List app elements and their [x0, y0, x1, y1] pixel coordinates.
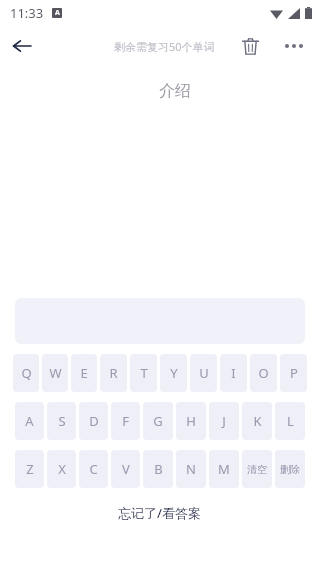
button[interactable]: More options [272, 26, 316, 66]
staticText: F [122, 412, 129, 430]
staticText: E [80, 364, 88, 382]
staticText: C [89, 460, 98, 478]
button[interactable]: O [250, 354, 277, 392]
staticText: 剩余需复习50个单词 [114, 39, 215, 54]
staticText: L [287, 412, 294, 430]
staticText: 删除 [280, 463, 300, 476]
button[interactable]: Y [160, 354, 187, 392]
button[interactable]: 删除 [275, 450, 305, 488]
staticText: V [122, 460, 130, 478]
staticText: U [199, 364, 209, 382]
button[interactable]: U [190, 354, 217, 392]
staticText: Y [170, 364, 178, 382]
button[interactable]: Delete [228, 26, 272, 66]
button[interactable]: F [111, 402, 140, 440]
staticText: I [231, 364, 236, 382]
staticText: M [218, 460, 230, 478]
staticText: Q [21, 364, 32, 382]
staticText: O [258, 364, 269, 382]
button[interactable]: W [42, 354, 68, 392]
button[interactable]: Z [15, 450, 44, 488]
staticText: 清空 [247, 463, 267, 476]
staticText: J [222, 412, 226, 430]
staticText: T [140, 364, 148, 382]
button[interactable]: S [47, 402, 76, 440]
button[interactable]: 介绍 [153, 79, 197, 103]
button[interactable]: X [47, 450, 76, 488]
button[interactable]: A [15, 402, 44, 440]
button[interactable]: G [143, 402, 173, 440]
button[interactable]: T [130, 354, 157, 392]
button[interactable]: Back [0, 26, 44, 66]
staticText: H [186, 412, 196, 430]
button[interactable]: P [280, 354, 307, 392]
button[interactable]: N [176, 450, 206, 488]
staticText: G [153, 412, 163, 430]
staticText: W [49, 364, 62, 382]
button[interactable]: C [79, 450, 108, 488]
staticText: A [25, 412, 34, 430]
staticText: X [58, 460, 66, 478]
staticText: B [154, 460, 163, 478]
button[interactable]: E [71, 354, 97, 392]
staticText: N [186, 460, 196, 478]
button[interactable]: Q [13, 354, 39, 392]
button[interactable]: R [100, 354, 127, 392]
button[interactable]: 忘记了/看答案 [104, 496, 216, 530]
button[interactable]: L [275, 402, 305, 440]
staticText: D [89, 412, 99, 430]
button[interactable]: B [143, 450, 173, 488]
staticText: Z [26, 460, 34, 478]
button[interactable]: V [111, 450, 140, 488]
button[interactable]: D [79, 402, 108, 440]
staticText: 忘记了/看答案 [118, 504, 202, 522]
staticText: R [109, 364, 118, 382]
button[interactable]: H [176, 402, 206, 440]
button[interactable]: M [209, 450, 239, 488]
button[interactable]: J [209, 402, 239, 440]
button[interactable]: K [242, 402, 272, 440]
staticText: 11:33 [10, 4, 44, 22]
button[interactable]: 清空 [242, 450, 272, 488]
staticText: A [55, 8, 60, 18]
staticText: K [253, 412, 262, 430]
staticText: S [58, 412, 66, 430]
staticText: P [290, 364, 298, 382]
button[interactable]: I [220, 354, 247, 392]
staticText: 介绍 [159, 81, 191, 101]
